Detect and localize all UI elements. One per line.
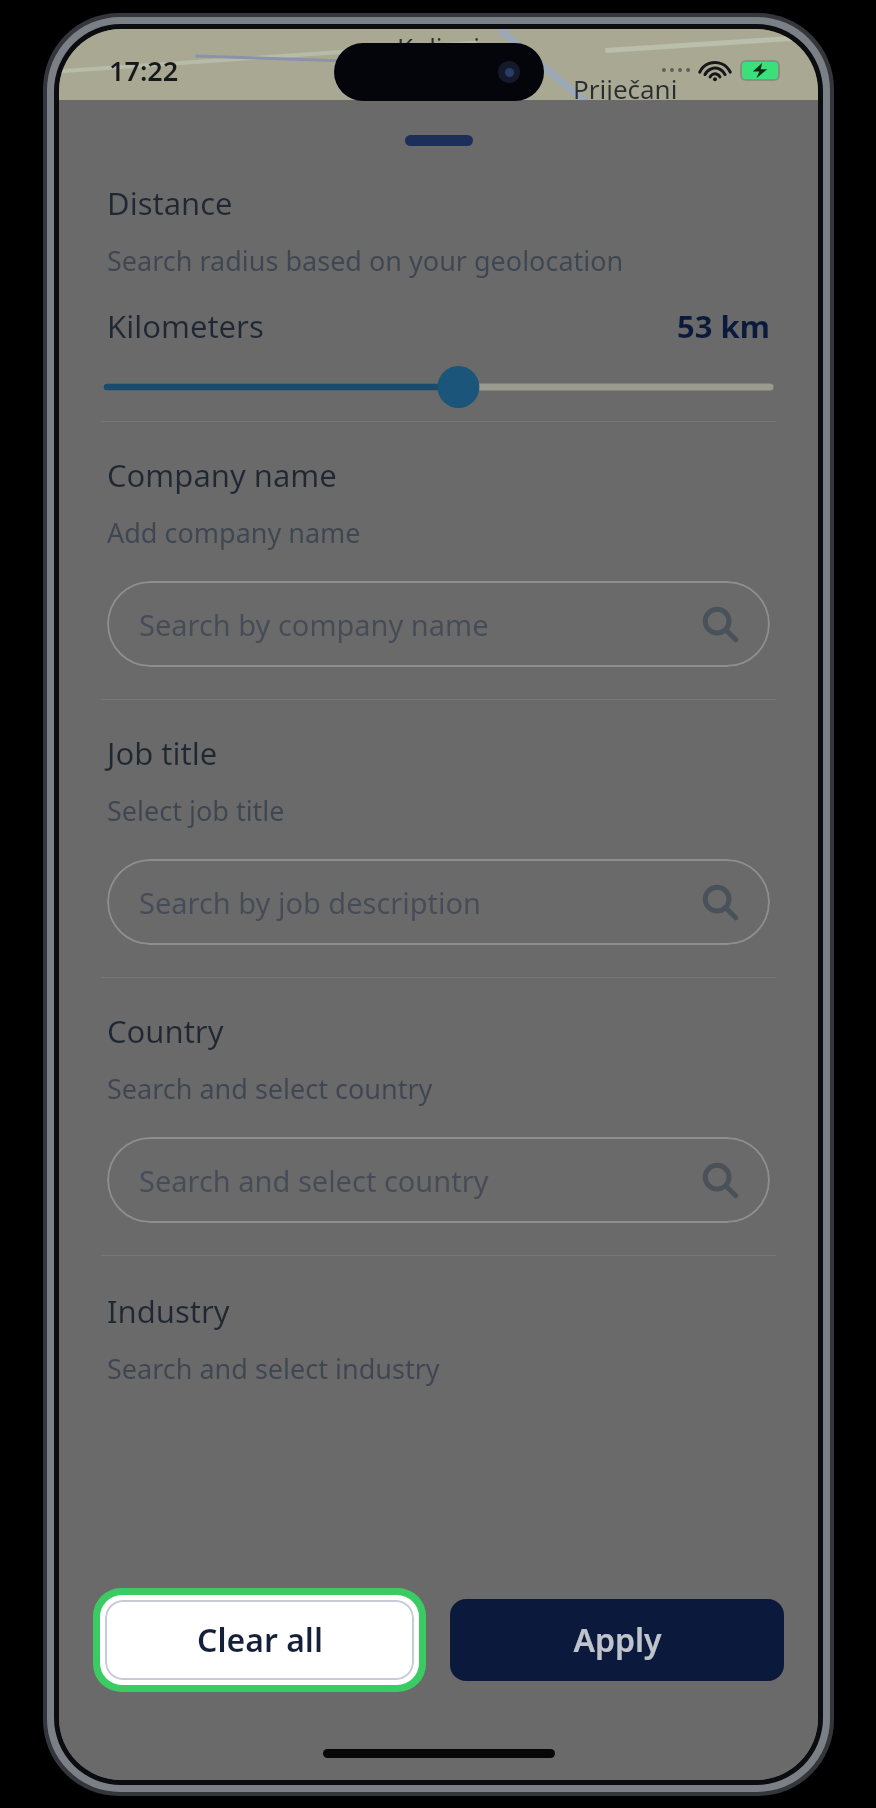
staticText: Add company name xyxy=(107,514,361,551)
button[interactable]: Search and select country xyxy=(107,1137,770,1223)
staticText: Search by company name xyxy=(139,605,489,644)
staticText: 53 km xyxy=(677,305,770,347)
staticText: Kilometers xyxy=(107,305,264,347)
other: Search xyxy=(702,884,738,920)
button[interactable]: Clear all xyxy=(105,1600,414,1680)
staticText: Select job title xyxy=(107,792,285,829)
button[interactable]: Search by company name xyxy=(107,581,770,667)
staticText: Company name xyxy=(107,454,337,496)
staticText: Kuljani xyxy=(397,29,480,64)
staticText: Search and select country xyxy=(107,1070,433,1107)
staticText: Country xyxy=(107,1010,224,1052)
staticText: Search by job description xyxy=(139,883,482,922)
staticText: Apply xyxy=(573,1618,662,1662)
staticText: Industry xyxy=(107,1290,230,1332)
staticText: Clear all xyxy=(197,1618,323,1662)
staticText: Search radius based on your geolocation xyxy=(107,242,624,279)
other: Search xyxy=(702,1162,738,1198)
staticText: Priječani xyxy=(573,71,678,106)
staticText: Job title xyxy=(107,732,218,774)
button[interactable]: Apply xyxy=(450,1599,784,1681)
staticText: Search and select industry xyxy=(107,1350,440,1387)
other: Search xyxy=(702,606,738,642)
staticText: Search and select country xyxy=(139,1161,489,1200)
staticText: 17:22 xyxy=(109,52,179,89)
button[interactable]: Search by job description xyxy=(107,859,770,945)
staticText: Distance xyxy=(107,182,233,224)
